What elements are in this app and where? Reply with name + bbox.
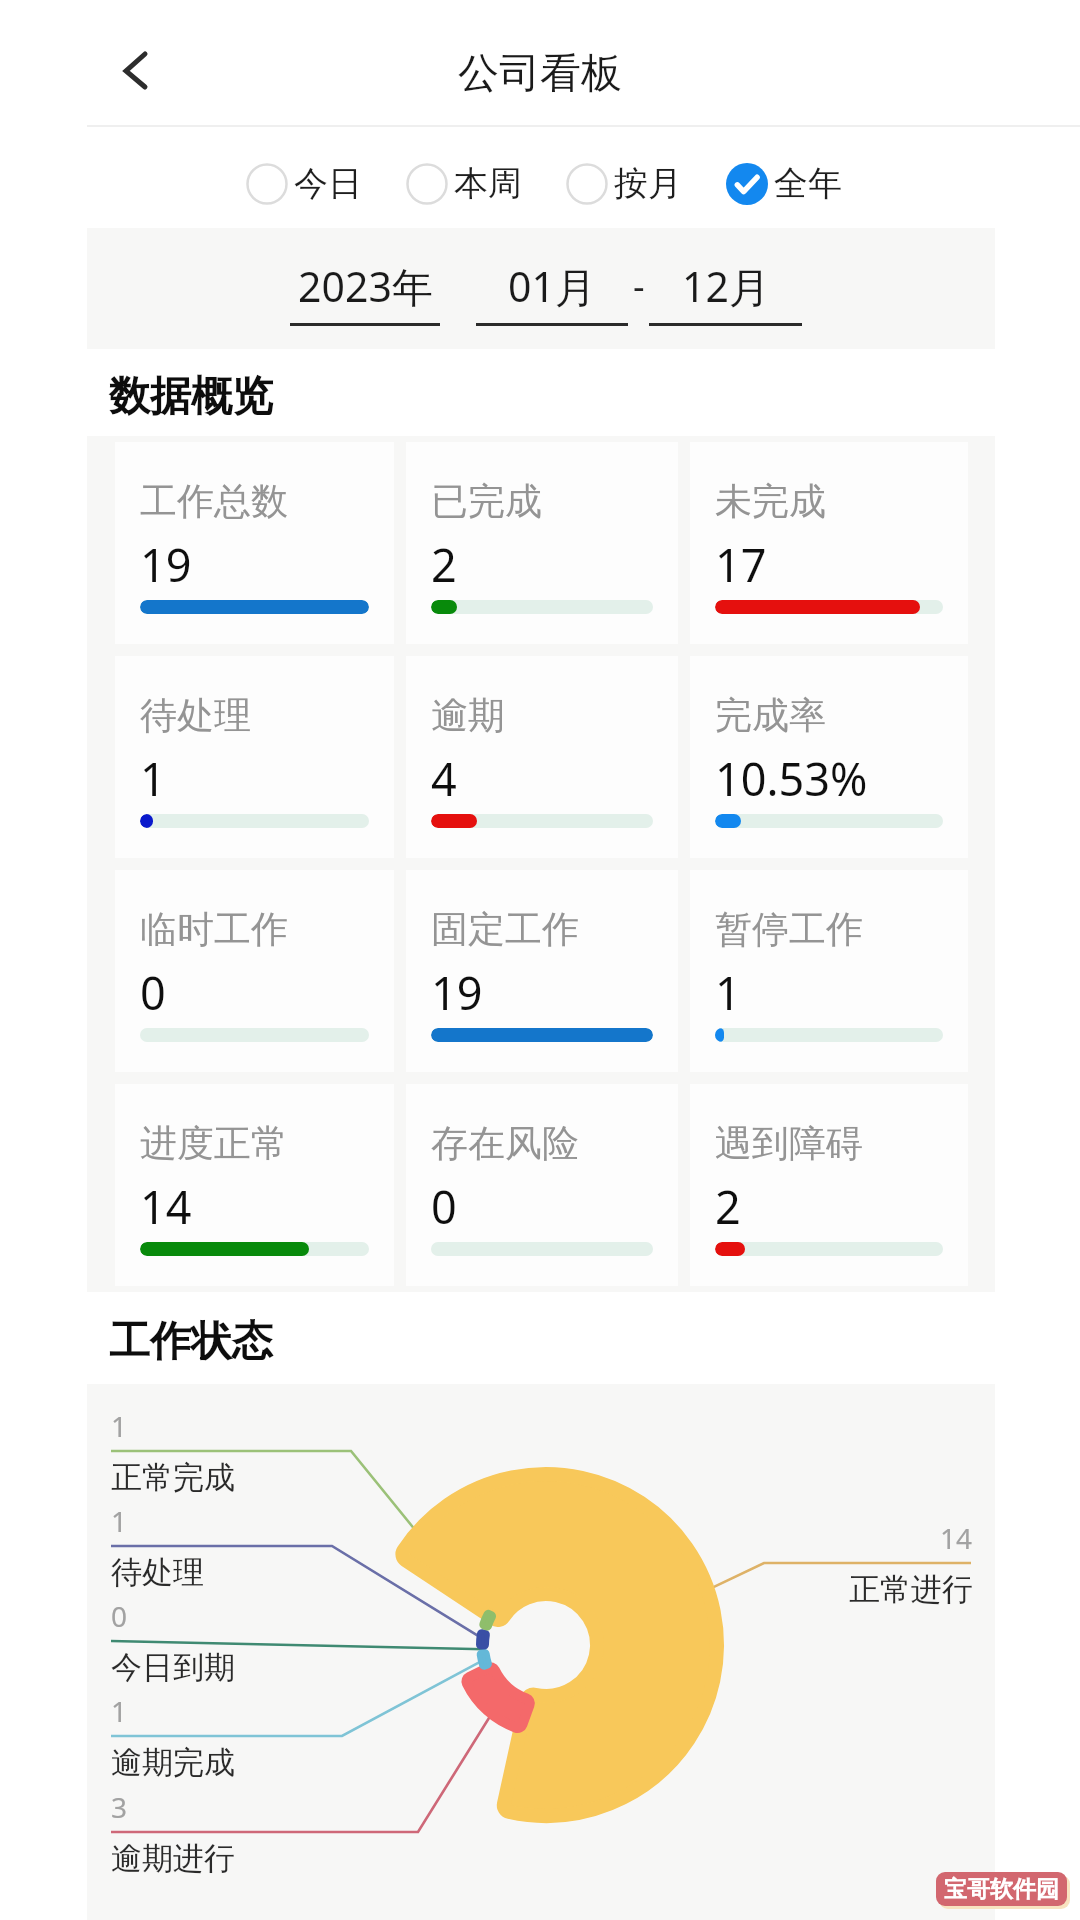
staticText: 今日到期 — [111, 1648, 235, 1687]
staticText: 19 — [140, 534, 192, 595]
staticText: 19 — [431, 962, 483, 1023]
staticText: 1 — [111, 1692, 128, 1730]
staticText: 正常进行 — [849, 1570, 973, 1609]
staticText: 1 — [111, 1502, 128, 1540]
staticText: 逾期进行 — [111, 1839, 235, 1878]
button[interactable]: 2023年 — [290, 258, 440, 326]
button[interactable]: 工作总数 — [115, 442, 394, 644]
staticText: 待处理 — [111, 1553, 204, 1592]
button[interactable]: 存在风险 — [406, 1084, 678, 1286]
staticText: 宝哥软件园 — [944, 1875, 1059, 1904]
button[interactable]: 已完成 — [406, 442, 678, 644]
staticText: 0 — [431, 1176, 457, 1237]
staticText: 未完成 — [715, 478, 826, 525]
button[interactable]: 本周 — [406, 162, 522, 205]
button[interactable]: 全年 — [726, 162, 842, 205]
button[interactable]: 按月 — [566, 162, 682, 205]
staticText: 本周 — [454, 162, 522, 205]
staticText: 临时工作 — [140, 906, 288, 953]
staticText: 今日 — [294, 162, 362, 205]
staticText: 14 — [940, 1519, 973, 1557]
staticText: 工作状态 — [109, 1316, 273, 1368]
staticText: 2023年 — [298, 258, 433, 314]
staticText: 14 — [140, 1176, 192, 1237]
staticText: 17 — [715, 534, 767, 595]
button[interactable]: 12月 — [649, 258, 802, 326]
staticText: 工作总数 — [140, 478, 288, 525]
staticText: 暂停工作 — [715, 906, 863, 953]
staticText: 12月 — [682, 258, 770, 314]
staticText: 正常完成 — [111, 1458, 235, 1497]
staticText: 逾期 — [431, 692, 505, 739]
staticText: 存在风险 — [431, 1120, 579, 1167]
staticText: 按月 — [614, 162, 682, 205]
button[interactable]: 未完成 — [690, 442, 968, 644]
button[interactable]: 遇到障碍 — [690, 1084, 968, 1286]
button[interactable]: 今日 — [246, 162, 362, 205]
staticText: 已完成 — [431, 478, 542, 525]
staticText: 1 — [111, 1407, 128, 1445]
staticText: 公司看板 — [458, 48, 622, 100]
staticText: 2 — [715, 1176, 741, 1237]
button[interactable]: 进度正常 — [115, 1084, 394, 1286]
staticText: - — [633, 261, 645, 310]
staticText: 进度正常 — [140, 1120, 288, 1167]
staticText: 遇到障碍 — [715, 1120, 863, 1167]
staticText: 3 — [111, 1788, 128, 1826]
staticText: 固定工作 — [431, 906, 579, 953]
button[interactable]: 固定工作 — [406, 870, 678, 1072]
staticText: 完成率 — [715, 692, 826, 739]
staticText: 10.53% — [715, 748, 868, 809]
button[interactable]: 待处理 — [115, 656, 394, 858]
staticText: 1 — [715, 962, 741, 1023]
staticText: 0 — [111, 1597, 128, 1635]
staticText: 1 — [140, 748, 166, 809]
staticText: 待处理 — [140, 692, 251, 739]
button[interactable]: 逾期 — [406, 656, 678, 858]
button[interactable]: 暂停工作 — [690, 870, 968, 1072]
button[interactable]: 完成率 — [690, 656, 968, 858]
staticText: 4 — [431, 748, 457, 809]
staticText: 数据概览 — [109, 371, 273, 423]
staticText: 全年 — [774, 162, 842, 205]
staticText: 01月 — [508, 258, 596, 314]
button[interactable]: Back — [90, 34, 180, 108]
staticText: 2 — [431, 534, 457, 595]
button[interactable]: 01月 — [476, 258, 628, 326]
button[interactable]: 临时工作 — [115, 870, 394, 1072]
staticText: 逾期完成 — [111, 1743, 235, 1782]
staticText: 0 — [140, 962, 166, 1023]
